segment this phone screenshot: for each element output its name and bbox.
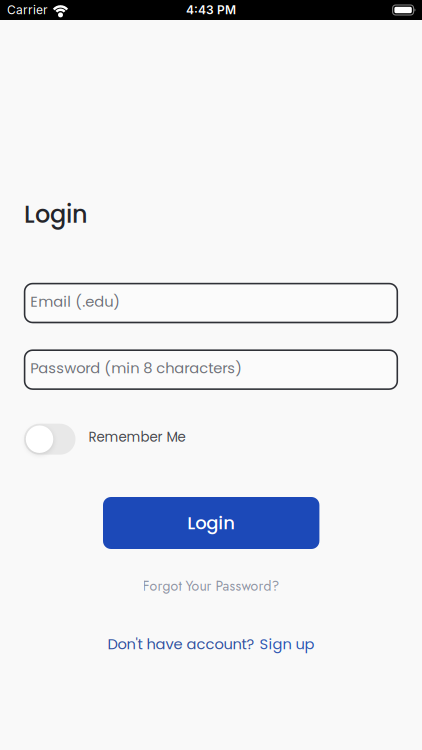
button[interactable]: Password (min 8 characters) xyxy=(24,349,398,390)
staticText: Forgot Your Password? xyxy=(142,576,279,596)
button[interactable]: Don't have account? xyxy=(107,634,314,654)
staticText: Password (min 8 characters) xyxy=(30,358,242,378)
button[interactable]: Email (.edu) xyxy=(24,283,398,323)
staticText: Remember Me xyxy=(88,428,185,447)
button[interactable]: Login xyxy=(103,497,319,549)
button[interactable]: Remember Me xyxy=(24,424,185,455)
staticText: Don't have account? xyxy=(107,634,254,654)
staticText: 4:43 PM xyxy=(186,3,236,17)
staticText: Email (.edu) xyxy=(30,291,120,312)
staticText: Carrier xyxy=(7,3,48,17)
staticText: Login xyxy=(24,197,88,231)
staticText: Login xyxy=(187,510,235,536)
button[interactable]: Forgot Your Password? xyxy=(142,576,279,596)
staticText: Sign up xyxy=(259,634,314,654)
